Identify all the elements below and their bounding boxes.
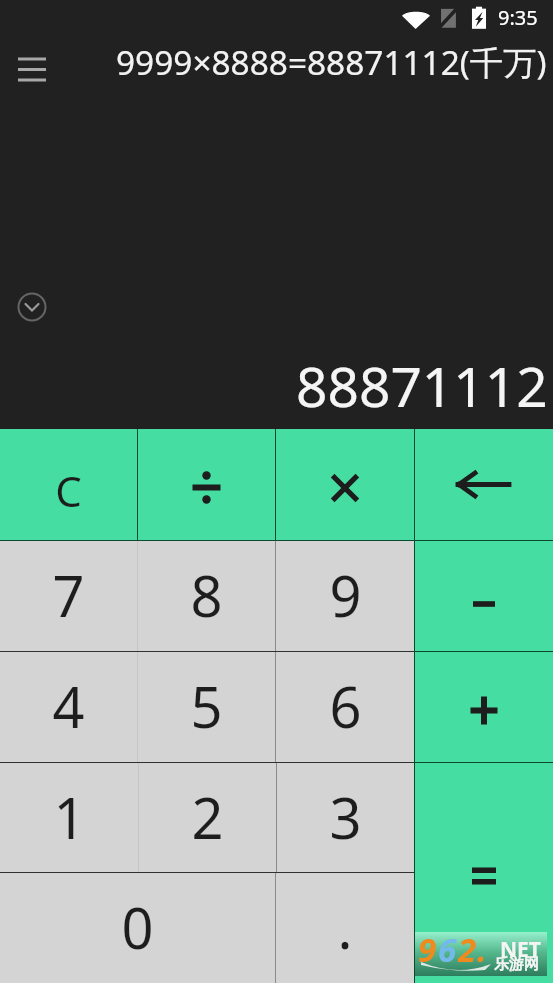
button[interactable]: 9 [276, 541, 414, 651]
button[interactable]: 3 [277, 763, 414, 872]
staticText: NET [500, 935, 541, 964]
button[interactable]: 5 [138, 652, 275, 762]
button[interactable]: 1 [0, 763, 138, 872]
staticText: 2 [191, 779, 224, 855]
staticText: 2. [458, 927, 488, 971]
button[interactable]: Menu [4, 38, 60, 94]
staticText: 7 [52, 557, 85, 633]
staticText: 乐游网 [494, 955, 539, 974]
staticText: 1 [53, 779, 86, 855]
staticText: 9:35 [498, 4, 538, 31]
staticText: 9 [418, 927, 438, 971]
button[interactable]: Multiply [276, 429, 414, 540]
button[interactable]: 0 [0, 873, 275, 983]
staticText: 9 [329, 557, 362, 633]
button[interactable]: Expand history [12, 287, 52, 327]
button[interactable]: Equals [415, 763, 553, 983]
staticText: 8 [190, 557, 223, 633]
button[interactable]: Minus [415, 541, 553, 651]
button[interactable]: 6 [276, 652, 414, 762]
button[interactable]: . [276, 873, 414, 983]
staticText: 6 [329, 668, 362, 744]
staticText: . [337, 889, 353, 965]
staticText: 88871112 [296, 348, 548, 423]
button[interactable]: 8 [138, 541, 275, 651]
button[interactable]: Plus [415, 652, 553, 762]
staticText: 3 [329, 779, 362, 855]
button[interactable]: C [0, 429, 137, 540]
button[interactable]: 4 [0, 652, 137, 762]
staticText: 9999×8888=88871112(千万) [116, 39, 547, 85]
button[interactable]: 7 [0, 541, 137, 651]
button[interactable]: Backspace [415, 429, 553, 540]
staticText: 0 [121, 889, 154, 965]
staticText: 6 [438, 927, 458, 971]
button[interactable]: Divide [138, 429, 275, 540]
staticText: 4 [52, 668, 85, 744]
staticText: C [55, 462, 82, 519]
staticText: 5 [190, 668, 223, 744]
button[interactable]: 2 [139, 763, 276, 872]
